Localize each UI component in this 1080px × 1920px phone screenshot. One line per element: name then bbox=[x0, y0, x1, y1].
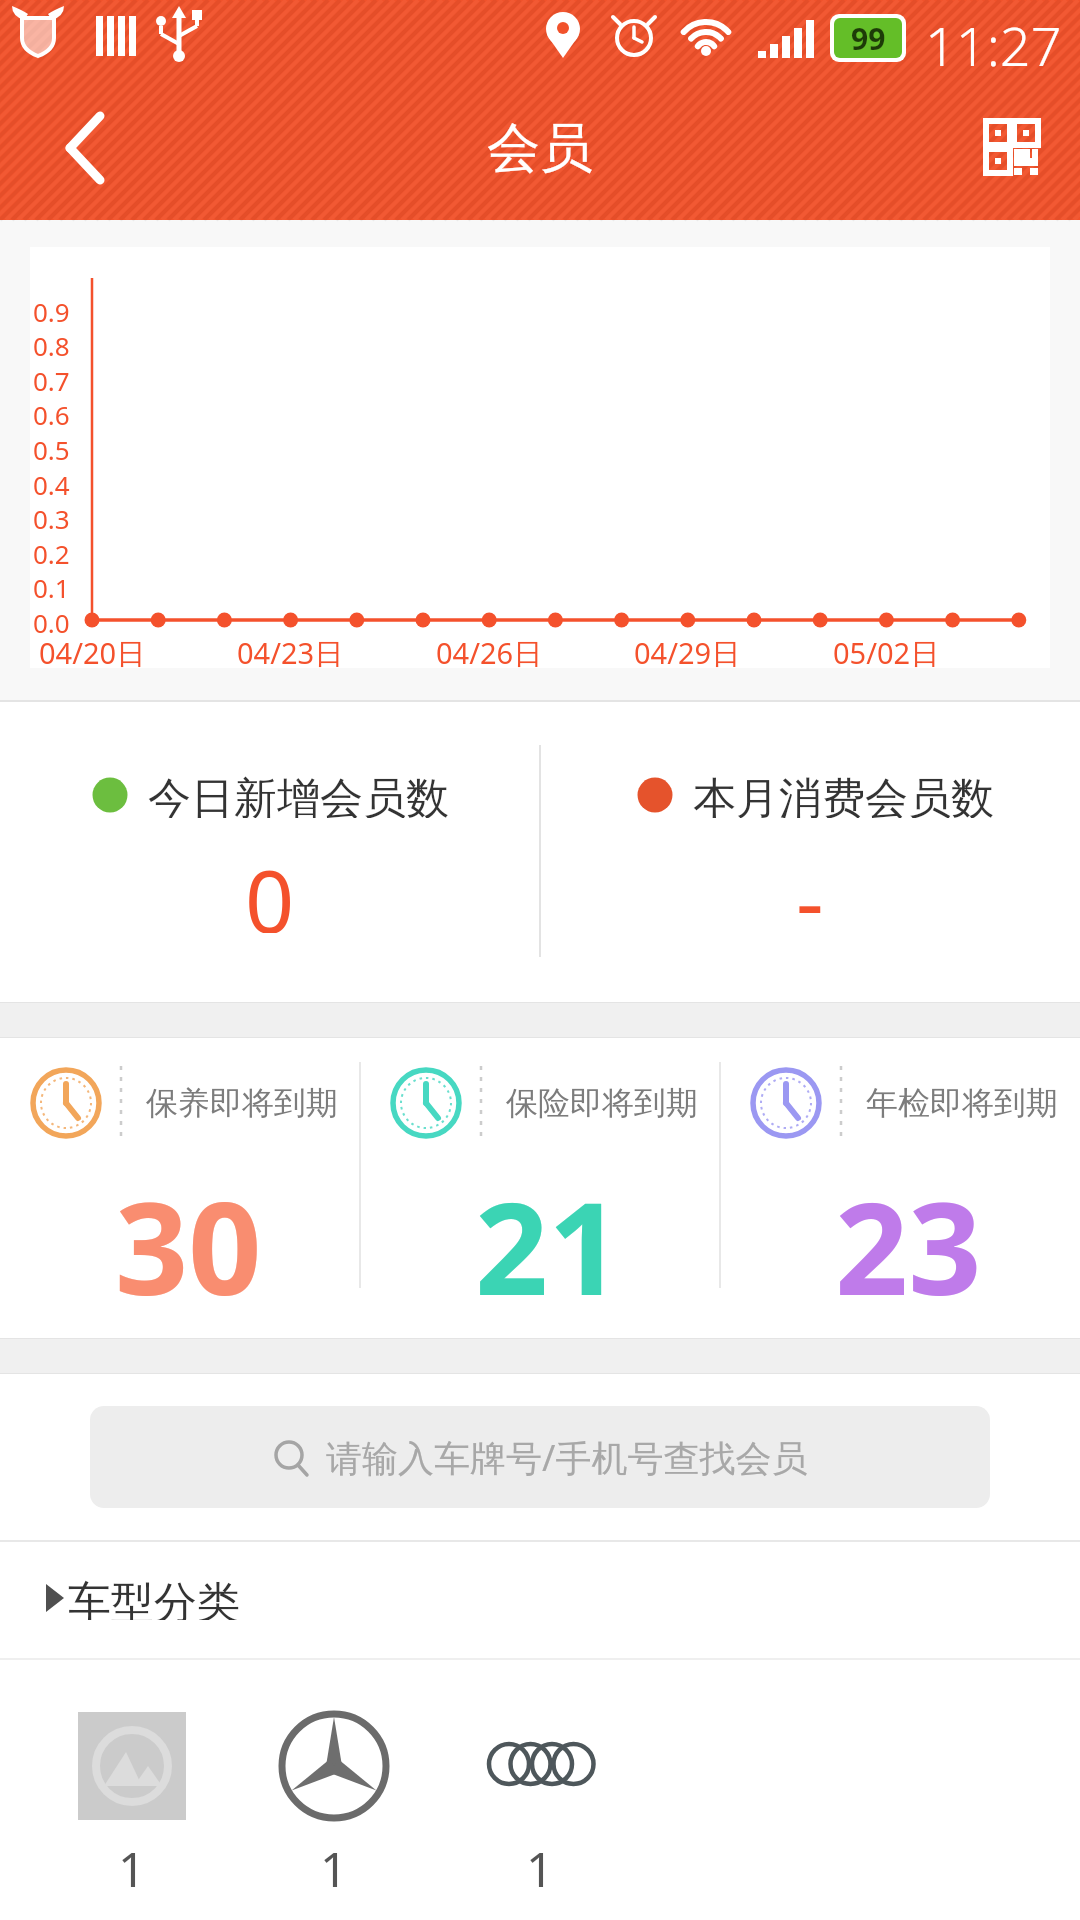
staticText: - bbox=[796, 841, 824, 933]
staticText: 0.8 bbox=[33, 328, 70, 360]
button[interactable] bbox=[965, 110, 1061, 190]
staticText: 0.1 bbox=[33, 570, 70, 602]
staticText: 11:27 bbox=[925, 8, 1062, 68]
staticText: 会员 bbox=[487, 115, 593, 182]
staticText: 1 bbox=[526, 1836, 554, 1888]
staticText: 保养即将到期 bbox=[146, 1083, 338, 1123]
staticText: 0.0 bbox=[33, 605, 70, 637]
staticText: 21 bbox=[475, 1158, 622, 1303]
staticText: 04/29日 bbox=[634, 633, 741, 673]
staticText: 04/26日 bbox=[436, 633, 543, 673]
button[interactable] bbox=[0, 1542, 1080, 1658]
staticText: 年检即将到期 bbox=[866, 1083, 1058, 1123]
staticText: 请输入车牌号/手机号查找会员 bbox=[326, 1433, 808, 1482]
staticText: 23 bbox=[835, 1158, 982, 1303]
staticText: 0.6 bbox=[33, 397, 70, 429]
button[interactable] bbox=[468, 1700, 613, 1890]
staticText: 0.9 bbox=[33, 294, 70, 326]
staticText: 1 bbox=[320, 1836, 348, 1888]
staticText: 本月消费会员数 bbox=[693, 772, 994, 818]
staticText: 0.4 bbox=[33, 467, 70, 499]
staticText: 0.2 bbox=[33, 536, 70, 568]
staticText: 车型分类 bbox=[68, 1576, 240, 1620]
staticText: 30 bbox=[115, 1158, 262, 1303]
staticText: 0 bbox=[245, 841, 295, 933]
button[interactable] bbox=[60, 1700, 205, 1890]
staticText: 今日新增会员数 bbox=[148, 772, 449, 818]
staticText: 0.7 bbox=[33, 363, 70, 395]
staticText: 0.5 bbox=[33, 432, 70, 464]
staticText: 99 bbox=[851, 18, 886, 59]
button[interactable] bbox=[40, 100, 136, 196]
button[interactable]: 请输入车牌号/手机号查找会员 bbox=[90, 1406, 990, 1508]
staticText: 05/02日 bbox=[833, 633, 940, 673]
button[interactable] bbox=[262, 1700, 407, 1890]
staticText: 0.3 bbox=[33, 501, 70, 533]
staticText: 保险即将到期 bbox=[506, 1083, 698, 1123]
staticText: 04/23日 bbox=[237, 633, 344, 673]
staticText: 1 bbox=[118, 1836, 146, 1888]
staticText: 04/20日 bbox=[39, 633, 146, 673]
